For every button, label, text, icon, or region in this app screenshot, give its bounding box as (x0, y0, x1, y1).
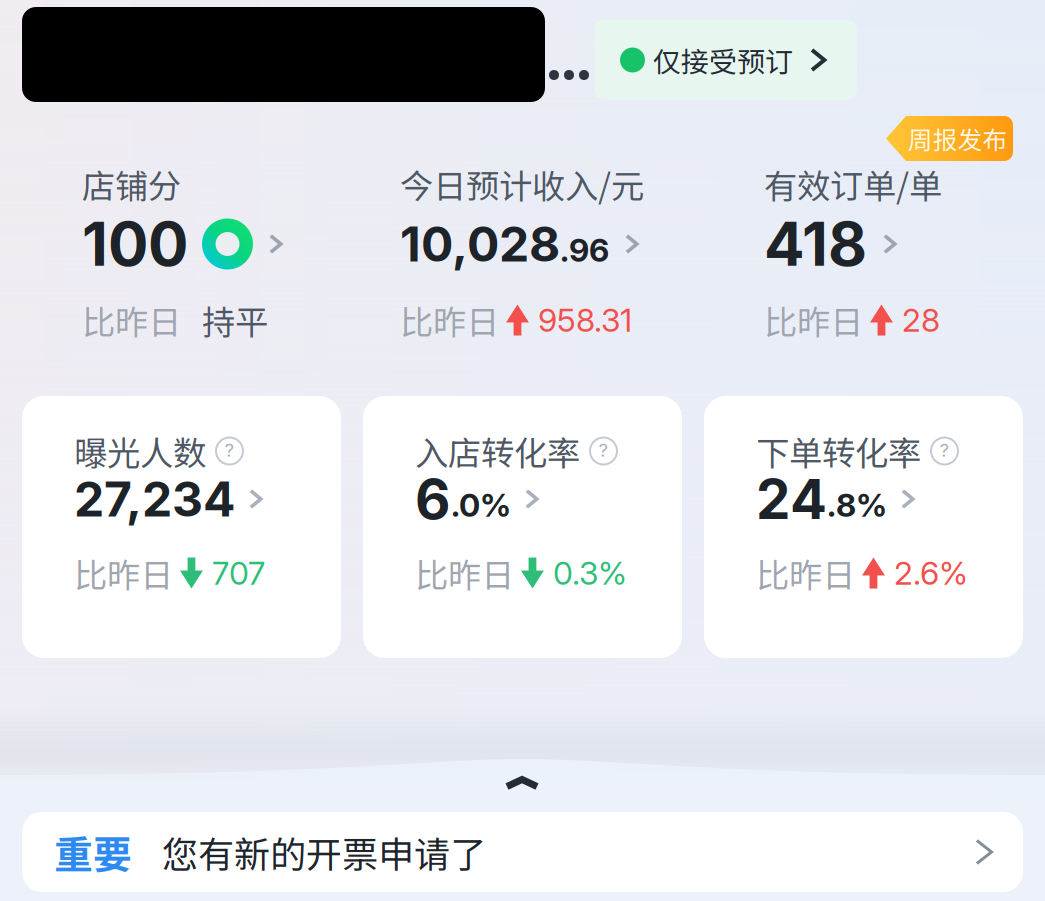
staticText: 比昨日 (764, 296, 863, 344)
staticText: 有效订单/单 (764, 160, 942, 208)
button[interactable]: 周报发布 (886, 116, 1013, 161)
staticText: ? (598, 439, 608, 461)
staticText: 您有新的开票申请了 (162, 826, 486, 878)
staticText: 27,234 (74, 470, 235, 528)
button[interactable]: 入店转化率 (363, 396, 682, 658)
staticText: .96 (560, 231, 609, 269)
staticText: 比昨日 (74, 549, 173, 597)
staticText: 仅接受预订 (653, 40, 793, 80)
staticText: ? (224, 439, 234, 461)
staticText: 今日预计收入/元 (400, 160, 644, 208)
staticText: 24 (756, 466, 827, 532)
staticText: 入店转化率 (415, 427, 580, 475)
staticText: ? (939, 439, 949, 461)
button[interactable]: 店铺分 (82, 167, 382, 337)
button[interactable]: 展开 (452, 755, 592, 811)
staticText: 下单转化率 (756, 427, 921, 475)
staticText: 比昨日 (400, 296, 499, 344)
staticText: 6 (415, 466, 451, 532)
staticText: 周报发布 (907, 121, 1007, 156)
staticText: 店铺分 (82, 160, 181, 208)
staticText: 100 (82, 208, 188, 280)
button[interactable]: 有效订单/单 (764, 167, 1034, 337)
staticText: 28 (902, 301, 940, 339)
staticText: 比昨日 (756, 549, 855, 597)
button[interactable]: 仅接受预订 (595, 20, 857, 100)
staticText: .8% (827, 486, 887, 524)
staticText: 比昨日 (415, 549, 514, 597)
button[interactable]: 重要 (22, 812, 1023, 892)
staticText: .0% (451, 486, 511, 524)
staticText: 重要 (54, 824, 132, 880)
staticText: 曝光人数 (74, 427, 206, 475)
staticText: 958.31 (538, 301, 632, 339)
staticText: 2.6% (894, 554, 968, 592)
button[interactable]: 下单转化率 (704, 396, 1023, 658)
staticText: 418 (764, 208, 867, 280)
staticText: 比昨日 (82, 296, 181, 344)
staticText: 707 (212, 554, 265, 592)
staticText: 10,028 (400, 215, 560, 273)
button[interactable]: 曝光人数 (22, 396, 341, 658)
staticText: 持平 (202, 296, 268, 344)
button[interactable]: 今日预计收入/元 (400, 167, 750, 337)
staticText: 0.3% (553, 554, 627, 592)
